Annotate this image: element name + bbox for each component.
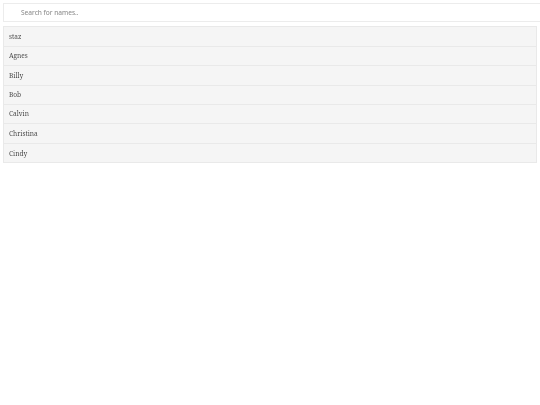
button[interactable]: Christina (3, 124, 537, 143)
button[interactable]: Search for names (3, 3, 540, 22)
button[interactable]: Calvin (3, 105, 537, 123)
staticText: Christina (9, 129, 38, 138)
button[interactable]: Cindy (3, 144, 537, 163)
staticText: staz (9, 32, 22, 41)
button[interactable]: Bob (3, 86, 537, 104)
staticText: Agnes (9, 51, 28, 60)
staticText: Search for names.. (21, 8, 79, 17)
staticText: Billy (9, 71, 24, 80)
button[interactable]: Agnes (3, 47, 537, 65)
button[interactable]: Billy (3, 66, 537, 85)
staticText: Bob (9, 90, 22, 99)
button[interactable]: staz (3, 26, 537, 46)
staticText: Calvin (9, 109, 29, 118)
staticText: Cindy (9, 149, 28, 158)
